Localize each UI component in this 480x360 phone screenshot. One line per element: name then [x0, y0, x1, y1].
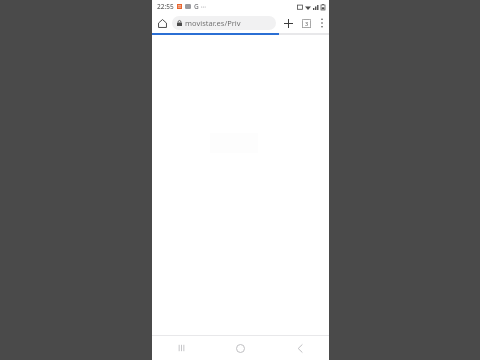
button[interactable]: movistar.es/Priv — [172, 16, 276, 30]
button[interactable]: Home — [152, 13, 172, 33]
staticText: 22:55 — [157, 2, 174, 11]
button[interactable]: Back — [270, 336, 329, 360]
button[interactable]: Recent apps — [152, 336, 211, 360]
button[interactable]: More options — [315, 14, 329, 32]
button[interactable]: Tabs, 3 open — [297, 14, 315, 32]
button[interactable]: Home — [211, 336, 270, 360]
staticText: 3 — [305, 20, 309, 27]
staticText: movistar.es/Priv — [185, 18, 241, 28]
button[interactable]: New tab — [279, 14, 297, 32]
staticText: G — [194, 2, 199, 11]
